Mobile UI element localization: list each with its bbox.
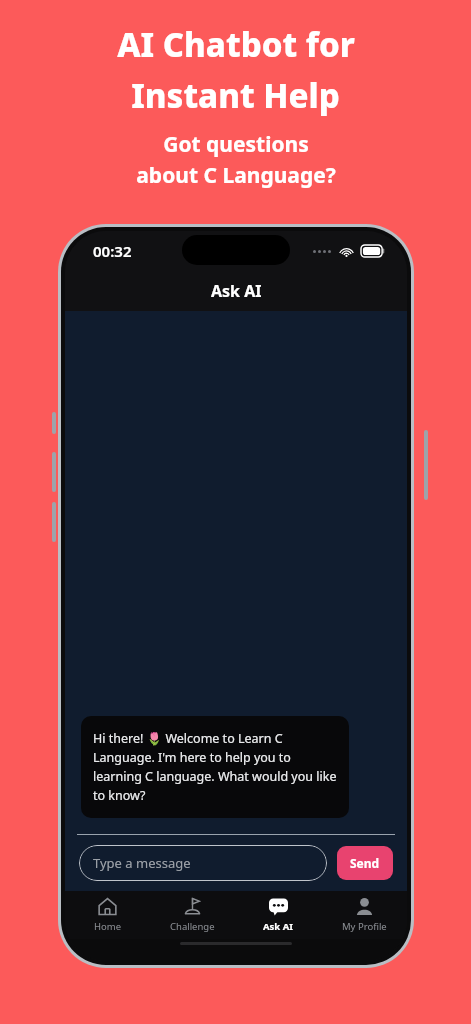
staticText: Challenge — [170, 920, 215, 933]
other: Challenge — [183, 897, 202, 916]
button[interactable]: My Profile — [321, 891, 407, 939]
staticText: Type a message — [93, 854, 191, 872]
staticText: Ask AI — [211, 280, 262, 302]
button[interactable]: Home — [65, 891, 150, 939]
other: Home — [98, 897, 117, 916]
staticText: Send — [350, 855, 380, 871]
button[interactable]: Ask AI — [235, 891, 321, 939]
staticText: Hi there! 🌷 Welcome to Learn C Language.… — [93, 730, 337, 804]
button[interactable]: Challenge — [150, 891, 235, 939]
staticText: about C Language? — [136, 161, 336, 190]
staticText: Ask AI — [263, 920, 293, 933]
button[interactable]: Send — [337, 846, 393, 880]
button[interactable]: Type a message — [79, 845, 327, 881]
staticText: Instant Help — [131, 73, 340, 118]
staticText: Home — [94, 920, 122, 933]
staticText: AI Chatbot for — [117, 22, 355, 67]
button[interactable]: Hi there! 🌷 Welcome to Learn C Language.… — [81, 716, 349, 818]
other: Ask AI — [269, 897, 288, 916]
staticText: Got questions — [163, 130, 309, 159]
staticText: My Profile — [342, 920, 387, 933]
other: My Profile — [355, 897, 374, 916]
staticText: 00:32 — [93, 241, 132, 261]
